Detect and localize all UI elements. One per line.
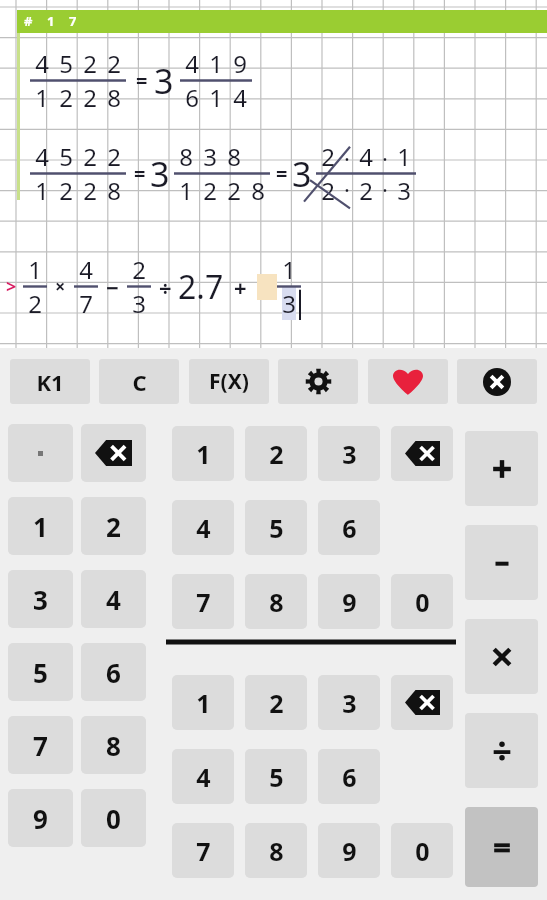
staticText: 2.7 [178, 265, 224, 309]
button[interactable]: 6 [318, 749, 380, 804]
button[interactable]: Backspace [391, 426, 453, 481]
staticText: 3 [203, 140, 217, 173]
staticText: · [344, 143, 350, 173]
staticText: 9 [233, 47, 247, 80]
button[interactable]: 7 [8, 716, 73, 774]
staticText: 8 [251, 174, 265, 207]
staticText: 1 [209, 81, 223, 114]
button[interactable]: 1 [172, 675, 234, 730]
staticText: 4 [359, 140, 373, 173]
staticText: 2 [203, 174, 217, 207]
button[interactable]: F(X) [189, 359, 269, 404]
button[interactable]: 4 [172, 749, 234, 804]
staticText: 1 [397, 140, 411, 173]
button[interactable]: 5 [245, 749, 307, 804]
button[interactable]: 1 [172, 426, 234, 481]
staticText: = [276, 160, 288, 187]
staticText: 0 [415, 834, 430, 868]
button[interactable]: Backspace [81, 424, 146, 482]
staticText: 3 [282, 287, 296, 320]
staticText: 5 [269, 511, 284, 545]
staticText: 6 [342, 760, 357, 794]
button[interactable]: 1 [8, 497, 73, 555]
staticText: 8 [106, 728, 121, 763]
staticText: 1 [282, 253, 296, 286]
button[interactable]: Settings [278, 359, 358, 404]
button[interactable]: 8 [81, 716, 146, 774]
staticText: 1 [196, 686, 211, 720]
button[interactable]: 2 [245, 675, 307, 730]
button[interactable]: 9 [318, 823, 380, 878]
staticText: 3 [342, 686, 357, 720]
button[interactable]: 8 [245, 574, 307, 629]
staticText: 3 [33, 582, 48, 617]
button[interactable]: 6 [81, 643, 146, 701]
button[interactable]: 5 [245, 500, 307, 555]
staticText: 8 [107, 81, 121, 114]
button[interactable]: Divide [465, 713, 538, 788]
button[interactable]: 4 [81, 570, 146, 628]
staticText: 1 [28, 253, 42, 286]
staticText: 2 [28, 287, 42, 320]
staticText: 1 [47, 12, 55, 30]
button[interactable]: C [99, 359, 179, 404]
staticText: 4 [185, 47, 199, 80]
staticText: F(X) [209, 367, 249, 396]
button[interactable]: 0 [81, 789, 146, 847]
button[interactable]: Decimal point [8, 424, 73, 482]
button[interactable]: K1 [10, 359, 90, 404]
staticText: 2 [83, 174, 97, 207]
staticText: 6 [342, 511, 357, 545]
staticText: 3 [342, 437, 357, 471]
staticText: · [344, 174, 350, 204]
button[interactable]: Minus [465, 525, 538, 600]
button[interactable]: 6 [318, 500, 380, 555]
staticText: 7 [69, 12, 77, 30]
button[interactable]: 9 [318, 574, 380, 629]
button[interactable]: 4 [172, 500, 234, 555]
button[interactable]: 7 [172, 823, 234, 878]
button[interactable]: Favorites [368, 359, 448, 404]
staticText: 1 [33, 509, 48, 544]
button[interactable]: Backspace [391, 675, 453, 730]
staticText: 0 [106, 801, 121, 836]
staticText: − [106, 272, 119, 302]
staticText: 1 [196, 437, 211, 471]
staticText: 2 [321, 140, 335, 173]
staticText: 3 [150, 151, 170, 197]
staticText: 2 [83, 47, 97, 80]
staticText: · [382, 174, 388, 204]
staticText: 1 [35, 81, 49, 114]
button[interactable]: Plus [465, 431, 538, 506]
button[interactable]: 5 [8, 643, 73, 701]
button[interactable]: 0 [391, 823, 453, 878]
staticText: 4 [196, 760, 211, 794]
button[interactable]: 9 [8, 789, 73, 847]
staticText: 7 [196, 585, 211, 619]
staticText: 2 [269, 686, 284, 720]
staticText: 4 [35, 140, 49, 173]
button[interactable]: 3 [318, 426, 380, 481]
button[interactable]: 3 [318, 675, 380, 730]
staticText: 6 [106, 655, 121, 690]
button[interactable]: 3 [8, 570, 73, 628]
staticText: 3 [132, 287, 146, 320]
button[interactable]: 0 [391, 574, 453, 629]
staticText: 2 [132, 253, 146, 286]
staticText: > [6, 274, 17, 299]
staticText: 6 [185, 81, 199, 114]
button[interactable]: 7 [172, 574, 234, 629]
button[interactable]: Equals [465, 807, 538, 887]
button[interactable]: 8 [245, 823, 307, 878]
staticText: 8 [227, 140, 241, 173]
button[interactable]: Close [457, 359, 537, 404]
staticText: 7 [79, 287, 93, 320]
staticText: 2 [321, 174, 335, 207]
staticText: 1 [179, 174, 193, 207]
button[interactable]: 2 [81, 497, 146, 555]
staticText: 4 [196, 511, 211, 545]
button[interactable]: 2 [245, 426, 307, 481]
staticText: 8 [107, 174, 121, 207]
button[interactable]: Multiply [465, 619, 538, 694]
staticText: 1 [209, 47, 223, 80]
